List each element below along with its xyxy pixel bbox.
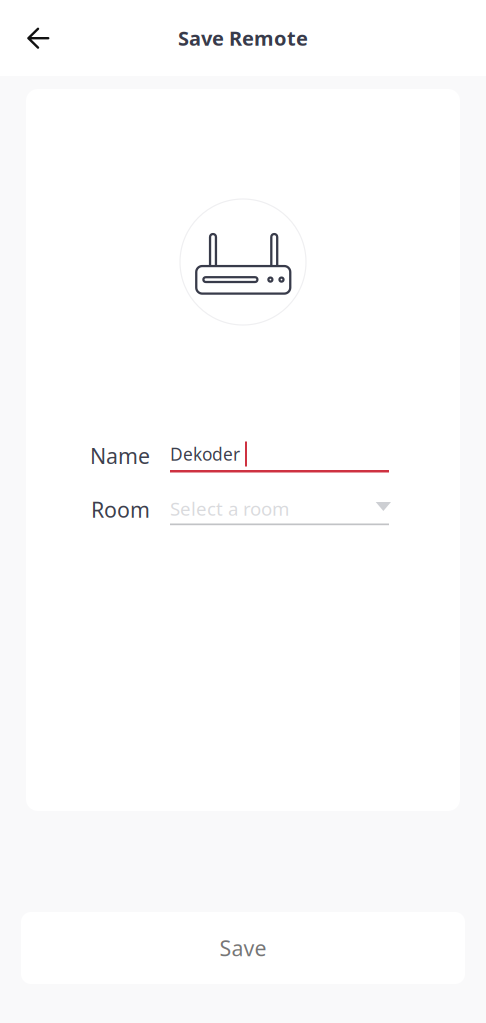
button[interactable]: Back [11,11,65,65]
button[interactable]: Select a room [170,493,389,525]
staticText: Room [91,495,150,523]
staticText: Dekoder [170,442,240,465]
staticText: Select a room [170,496,289,521]
staticText: Save [219,934,266,962]
staticText: Save Remote [178,25,308,51]
button[interactable]: Save [21,912,465,984]
button[interactable]: Dekoder [170,439,389,472]
staticText: Name [90,442,150,470]
